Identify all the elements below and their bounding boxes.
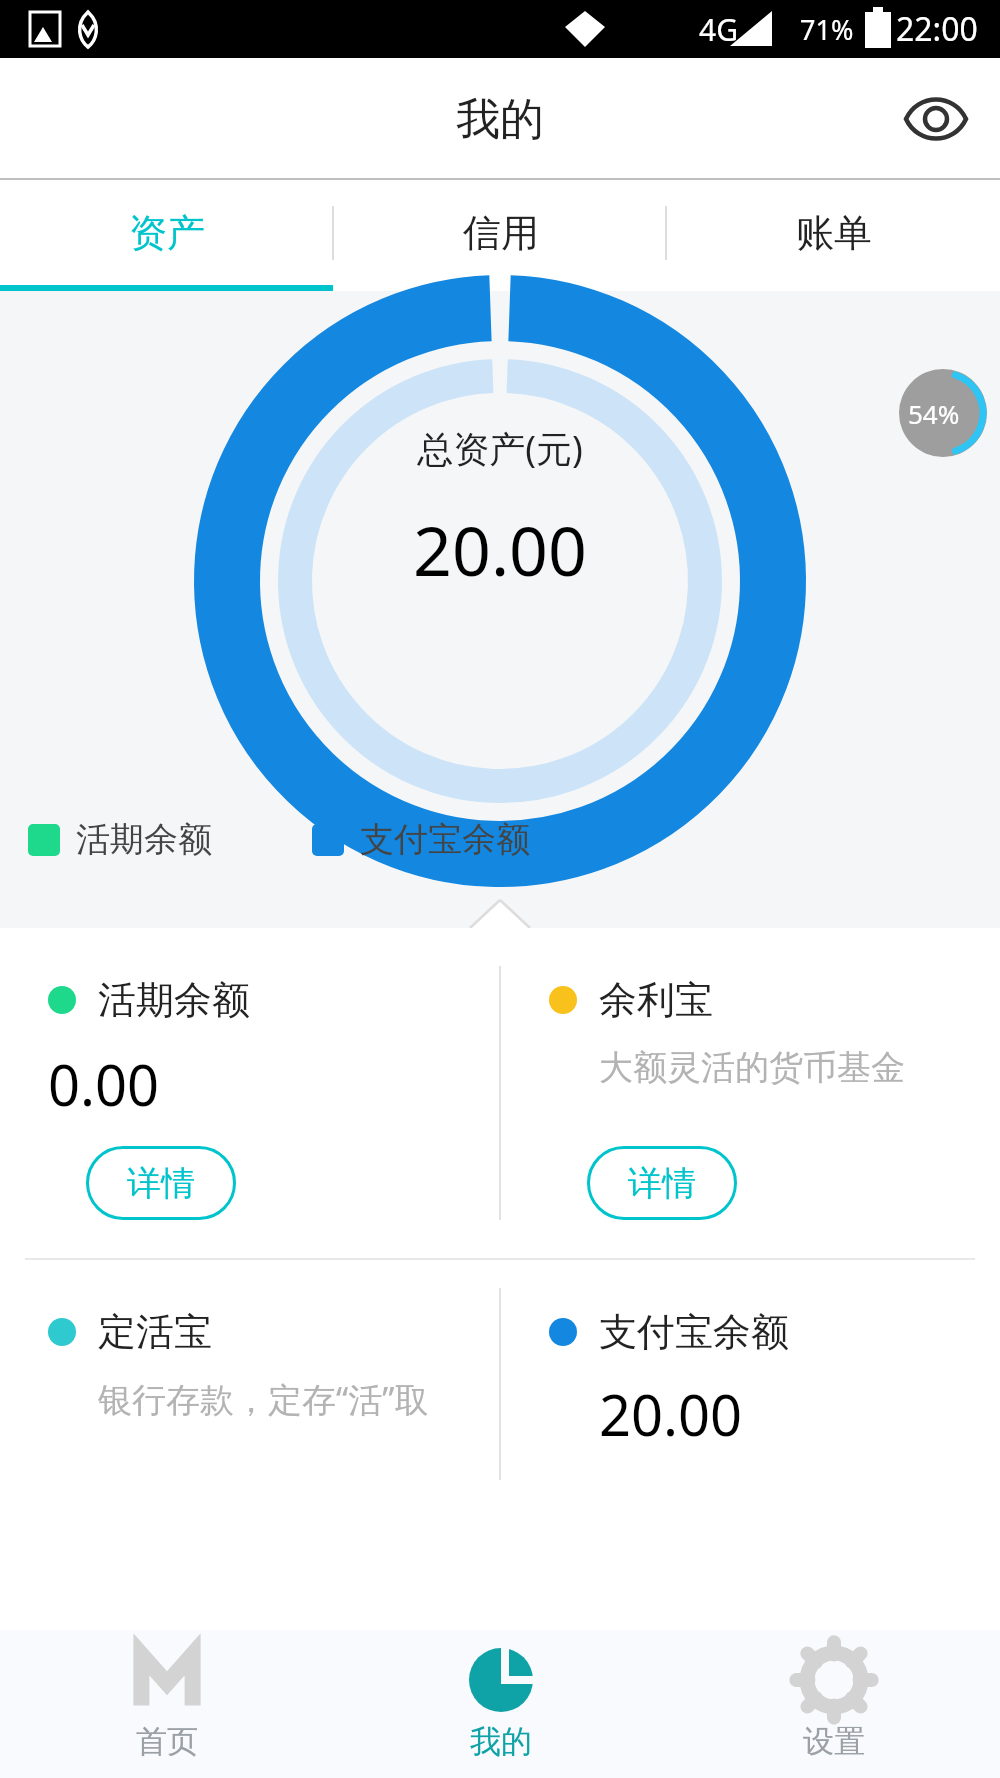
button[interactable]: Toggle visibility xyxy=(896,79,976,159)
button[interactable]: 54 percent xyxy=(890,369,978,457)
staticText: 活期余额 xyxy=(76,818,212,861)
button[interactable]: 资产 xyxy=(0,180,334,285)
staticText: 资产 xyxy=(129,209,205,257)
button[interactable]: 信用 xyxy=(334,180,667,285)
staticText: 账单 xyxy=(796,209,872,257)
staticText: 我的 xyxy=(456,92,544,147)
button[interactable]: 账单 xyxy=(667,180,1000,285)
staticText: 信用 xyxy=(463,209,539,257)
button[interactable]: 活期余额 xyxy=(0,928,499,1258)
staticText: 支付宝余额 xyxy=(599,1308,789,1356)
staticText: 我的 xyxy=(470,1722,532,1761)
staticText: 20.00 xyxy=(599,1376,743,1452)
staticText: 大额灵活的货币基金 xyxy=(599,1046,905,1089)
staticText: 余利宝 xyxy=(599,976,713,1024)
staticText: 71% xyxy=(800,11,854,48)
staticText: 活期余额 xyxy=(98,976,250,1024)
button[interactable]: 我的 xyxy=(334,1630,667,1778)
staticText: 详情 xyxy=(127,1162,195,1205)
button[interactable]: 设置 xyxy=(667,1630,1000,1778)
staticText: 设置 xyxy=(803,1722,865,1761)
button[interactable]: 详情 xyxy=(587,1146,737,1220)
button[interactable]: 首页 xyxy=(0,1630,334,1778)
staticText: 首页 xyxy=(136,1722,198,1761)
staticText: 定活宝 xyxy=(98,1308,212,1356)
button[interactable]: 支付宝余额 xyxy=(501,1260,1000,1480)
staticText: 总资产(元) xyxy=(417,424,583,473)
staticText: 银行存款，定存“活”取 xyxy=(98,1376,429,1422)
staticText: 4G xyxy=(699,9,738,50)
staticText: 22:00 xyxy=(896,7,978,51)
staticText: 20.00 xyxy=(413,503,587,596)
button[interactable]: 余利宝 xyxy=(501,928,1000,1258)
staticText: 0.00 xyxy=(48,1046,160,1122)
staticText: 支付宝余额 xyxy=(360,818,530,861)
staticText: 详情 xyxy=(628,1162,696,1205)
button[interactable]: 详情 xyxy=(86,1146,236,1220)
staticText: 54% xyxy=(908,396,960,431)
button[interactable]: 定活宝 xyxy=(0,1260,499,1480)
